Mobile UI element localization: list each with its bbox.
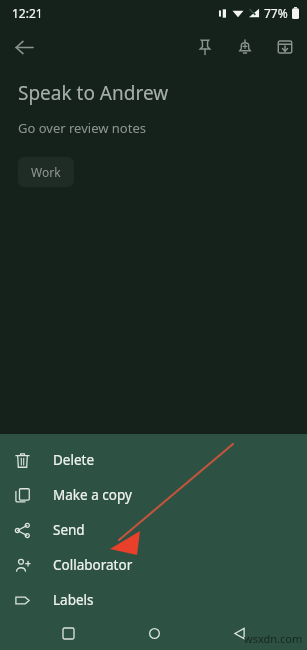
- staticText: Labels: [53, 591, 94, 609]
- staticText: Make a copy: [53, 486, 132, 504]
- button[interactable]: Labels: [0, 582, 307, 617]
- button[interactable]: Reminder: [229, 31, 261, 63]
- staticText: Go over review notes: [18, 119, 146, 137]
- button[interactable]: Send: [0, 512, 307, 547]
- staticText: wsxdn.com: [244, 631, 303, 646]
- button[interactable]: Collaborator: [0, 547, 307, 582]
- button[interactable]: Make a copy: [0, 477, 307, 512]
- button[interactable]: Delete: [0, 442, 307, 477]
- staticText: Send: [53, 521, 85, 539]
- button[interactable]: Back: [6, 29, 42, 65]
- button[interactable]: Recents: [51, 617, 85, 650]
- staticText: Work: [31, 164, 61, 180]
- button[interactable]: Back: [222, 617, 256, 650]
- staticText: 12:21: [12, 5, 43, 21]
- staticText: 77%: [264, 5, 288, 21]
- button[interactable]: Home: [137, 617, 171, 650]
- button[interactable]: Archive: [269, 31, 301, 63]
- staticText: Collaborator: [53, 556, 133, 574]
- button[interactable]: Work: [18, 157, 74, 187]
- staticText: Speak to Andrew: [18, 80, 169, 106]
- staticText: Delete: [53, 451, 95, 469]
- button[interactable]: Pin: [189, 31, 221, 63]
